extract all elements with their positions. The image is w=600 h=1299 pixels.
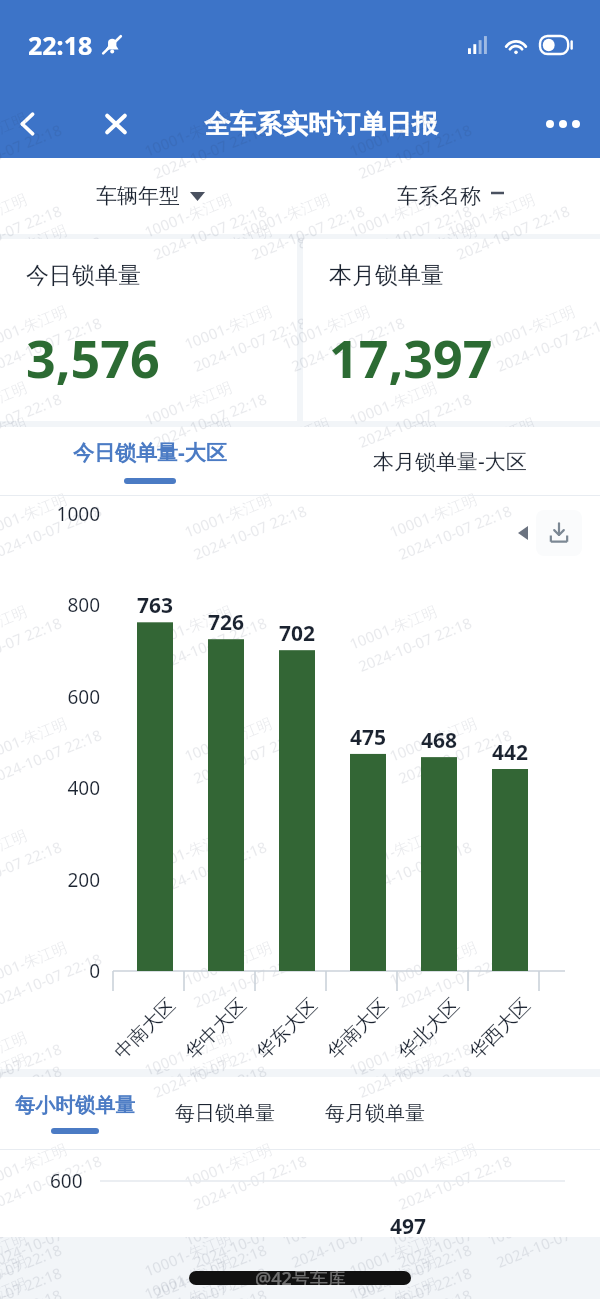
staticText: 10001-朱江明 [141,107,235,161]
staticText: 2024-10-07 22:18 [190,455,310,519]
staticText: 10001-朱江明 [0,443,70,497]
button[interactable]: More options [526,90,600,158]
button[interactable]: 每小时锁单量 [0,1077,150,1149]
staticText: 10001-朱江明 [0,712,70,766]
staticText: 2024-10-07 22:18 [150,612,270,676]
button[interactable]: Download [536,510,582,556]
button[interactable]: 车系名称 [300,158,600,234]
button[interactable]: Close [86,90,146,158]
staticText: 10001-朱江明 [346,331,440,385]
staticText: 10001-朱江明 [346,824,440,878]
staticText: 2024-10-07 22:18 [190,1172,310,1236]
staticText: 10001-朱江明 [181,1115,275,1169]
staticText: 2024-10-07 22:18 [395,984,515,1048]
staticText: 2024-10-07 22:18 [355,612,475,676]
staticText: 10001-朱江明 [386,219,480,273]
staticText: 200 [67,867,100,893]
staticText: 10001-朱江明 [346,1250,440,1299]
staticText: 10001-朱江明 [346,376,440,430]
staticText: 2024-10-07 22:18 [493,984,600,1048]
staticText: 3,576 [26,322,160,393]
staticText: 10001-朱江明 [386,1138,480,1192]
staticText: 10001-朱江明 [346,188,440,242]
staticText: 2024-10-07 22:18 [355,1239,475,1299]
staticText: 2024-10-07 22:18 [0,984,105,1048]
staticText: 华北大区 [394,994,464,1064]
staticText: 2024-10-07 22:18 [355,1262,475,1299]
staticText: 2024-10-07 22:18 [0,1208,105,1272]
staticText: 10001-朱江明 [484,300,578,354]
staticText: 2024-10-07 22:18 [150,836,270,900]
staticText: 10001-朱江明 [0,748,70,802]
staticText: 10001-朱江明 [386,1160,480,1214]
staticText: 2024-10-07 22:18 [0,119,65,183]
staticText: 10001-朱江明 [141,860,235,914]
staticText: 10001-朱江明 [141,824,235,878]
button[interactable]: Back [0,90,56,158]
staticText: 10001-朱江明 [279,972,373,1026]
staticText: 2024-10-07 22:18 [248,200,368,264]
staticText: 10001-朱江明 [0,860,30,914]
staticText: 2024-10-07 22:18 [355,119,475,183]
staticText: 10001-朱江明 [279,300,373,354]
button[interactable]: 每月锁单量 [300,1077,450,1149]
staticText: 10001-朱江明 [141,636,235,690]
staticText: 10001-朱江明 [0,412,30,466]
staticText: 10001-朱江明 [0,1084,30,1138]
staticText: 2024-10-07 22:18 [355,388,475,452]
staticText: 10001-朱江明 [279,748,373,802]
staticText: 2024-10-07 22:18 [190,312,310,376]
staticText: 2024-10-07 22:18 [0,1284,65,1299]
staticText: 10001-朱江明 [484,972,578,1026]
staticText: 10001-朱江明 [181,524,275,578]
staticText: 800 [67,592,100,618]
staticText: 2024-10-07 22:18 [355,1284,475,1299]
staticText: 17,397 [329,322,493,393]
staticText: 10001-朱江明 [0,331,30,385]
staticText: 10001-朱江明 [346,600,440,654]
staticText: 10001-朱江明 [141,1084,235,1138]
staticText: 10001-朱江明 [0,524,70,578]
staticText: 2024-10-07 22:18 [0,903,105,967]
button[interactable]: 本月锁单量-大区 [300,427,600,495]
button[interactable]: 10001-朱江明 [0,239,297,421]
staticText: 2024-10-07 22:18 [395,724,515,788]
staticText: 2024-10-07 22:18 [150,424,270,488]
button[interactable]: 今日锁单量-大区 [0,427,300,495]
staticText: 2024-10-07 22:18 [288,984,408,1048]
staticText: 10001-朱江明 [346,412,440,466]
staticText: 10001-朱江明 [181,219,275,273]
staticText: 中南大区 [110,994,180,1064]
staticText: 10001-朱江明 [386,972,480,1026]
staticText: 2024-10-07 22:18 [0,724,105,788]
staticText: 10001-朱江明 [0,219,70,273]
staticText: 2024-10-07 22:18 [248,648,368,712]
staticText: 2024-10-07 22:18 [493,1208,600,1272]
staticText: 2024-10-07 22:18 [453,872,573,936]
staticText: 10001-朱江明 [346,779,440,833]
staticText: 10001-朱江明 [386,443,480,497]
button[interactable]: 每日锁单量 [150,1077,300,1149]
staticText: 2024-10-07 22:18 [190,984,310,1048]
staticText: 10001-朱江明 [141,1026,235,1080]
staticText: 10001-朱江明 [444,412,538,466]
staticText: 2024-10-07 22:18 [150,648,270,712]
staticText: 2024-10-07 22:18 [0,536,105,600]
staticText: 2024-10-07 22:18 [0,1239,65,1299]
staticText: 10001-朱江明 [346,1026,440,1080]
button[interactable]: 车辆年型 [0,158,300,234]
staticText: 2024-10-07 22:18 [0,343,65,407]
staticText: 442 [492,738,529,767]
staticText: 华东大区 [252,994,322,1064]
button[interactable]: 10001-朱江明 [303,239,600,421]
staticText: 2024-10-07 22:18 [248,872,368,936]
staticText: 2024-10-07 22:18 [0,612,65,676]
staticText: 10001-朱江明 [346,1084,440,1138]
staticText: 10001-朱江明 [386,300,480,354]
